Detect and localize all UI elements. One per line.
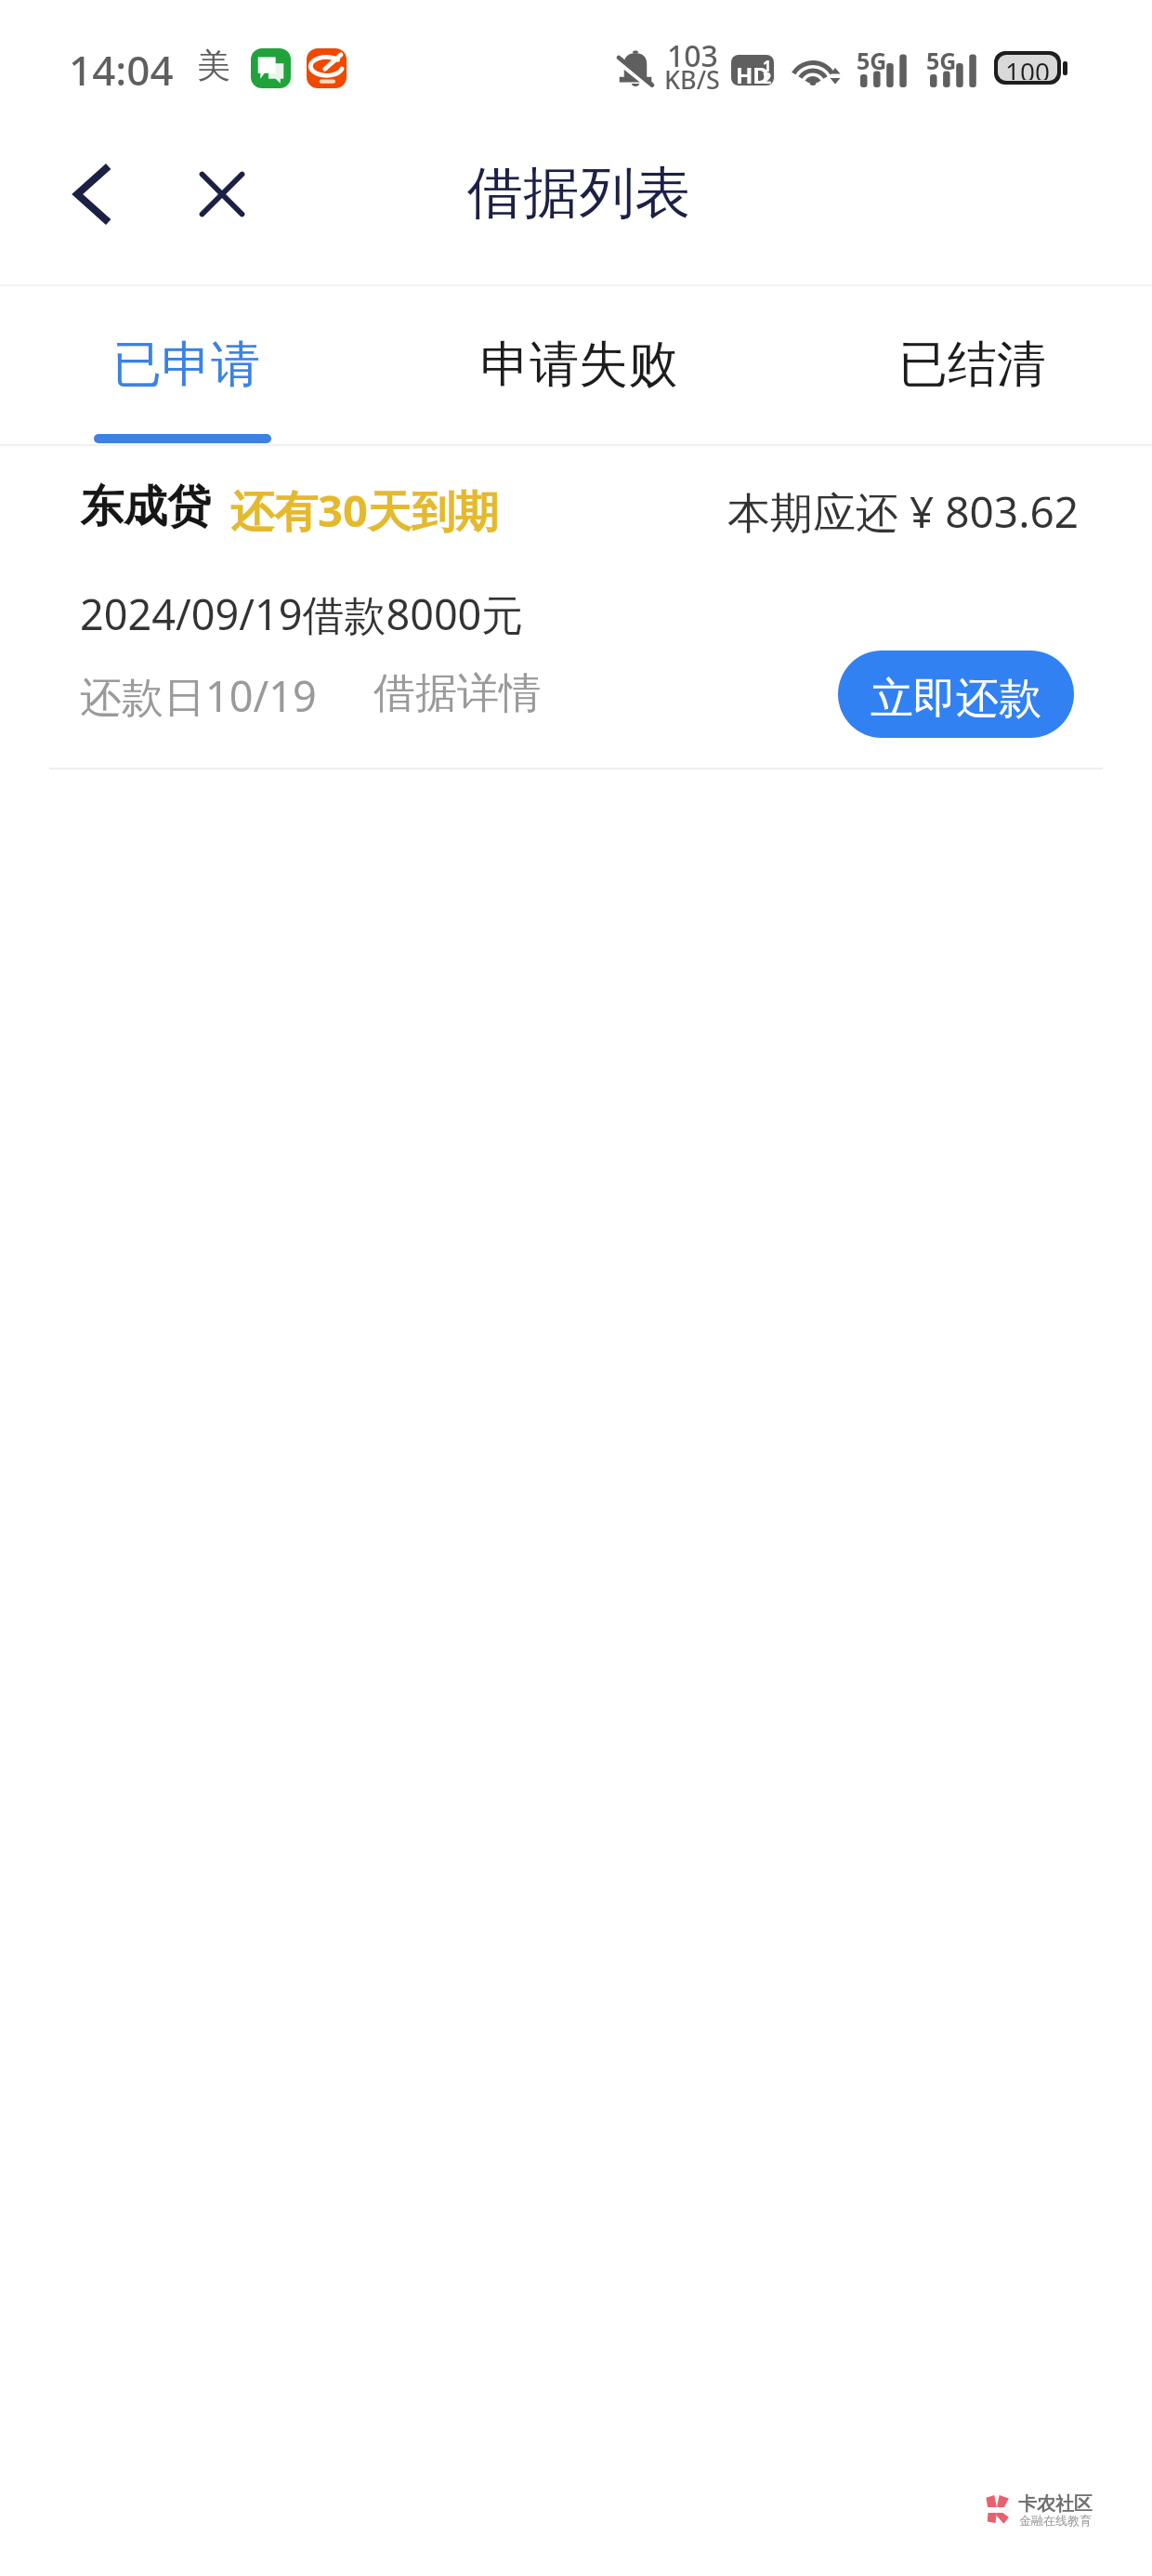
staticText: 100 bbox=[1005, 55, 1051, 80]
staticText: 东成贷 bbox=[80, 480, 211, 534]
staticText: 5G bbox=[926, 45, 957, 76]
staticText: 14:04 bbox=[69, 42, 174, 98]
staticText: 1 bbox=[763, 56, 772, 76]
button[interactable]: Back bbox=[51, 153, 133, 235]
button[interactable]: 已申请 bbox=[46, 286, 325, 444]
button[interactable]: 申请失败 bbox=[439, 286, 718, 444]
staticText: KB/S bbox=[664, 62, 720, 97]
button[interactable]: Close bbox=[181, 153, 263, 235]
button[interactable]: 东成贷 bbox=[0, 446, 1152, 771]
staticText: 还款日10/19 bbox=[80, 667, 317, 724]
staticText: 已申请 bbox=[112, 334, 260, 396]
staticText: 已结清 bbox=[898, 334, 1046, 396]
staticText: 还有30天到期 bbox=[230, 480, 499, 540]
button[interactable]: 立即还款 bbox=[838, 651, 1074, 738]
staticText: 金融在线教育 bbox=[1019, 2513, 1092, 2528]
button[interactable]: 已结清 bbox=[832, 286, 1111, 444]
button[interactable]: 借据详情 bbox=[373, 667, 541, 720]
staticText: 103 bbox=[667, 35, 718, 76]
staticText: HD bbox=[736, 59, 769, 85]
staticText: 借据列表 bbox=[467, 158, 690, 229]
staticText: 申请失败 bbox=[480, 334, 677, 396]
staticText: 5G bbox=[857, 45, 887, 76]
staticText: 卡农社区 bbox=[1018, 2492, 1093, 2516]
staticText: 2 bbox=[763, 68, 772, 85]
staticText: 立即还款 bbox=[871, 672, 1041, 726]
staticText: 美 bbox=[197, 45, 230, 86]
staticText: 本期应还 ¥ 803.62 bbox=[727, 482, 1080, 541]
staticText: 2024/09/19借款8000元 bbox=[80, 585, 524, 642]
